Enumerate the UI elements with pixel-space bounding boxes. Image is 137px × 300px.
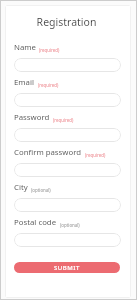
staticText: (optional) [31,187,51,193]
staticText: Name [14,42,36,53]
button[interactable] [14,128,121,142]
staticText: (required) [39,47,60,53]
staticText: Postal code [14,217,57,228]
button[interactable]: SUBMIT [14,262,120,273]
button[interactable] [14,163,121,177]
button[interactable] [14,233,121,247]
staticText: Confirm password [14,147,82,158]
button[interactable] [14,58,121,72]
staticText: (required) [85,152,106,158]
button[interactable] [14,93,121,107]
staticText: (required) [53,117,74,123]
staticText: Registration [13,15,120,29]
staticText: (required) [38,82,59,88]
staticText: City [14,182,28,193]
staticText: (optional) [60,222,80,228]
staticText: SUBMIT [54,264,80,272]
button[interactable] [14,198,121,212]
staticText: Password [14,112,50,123]
staticText: Email [14,77,35,88]
